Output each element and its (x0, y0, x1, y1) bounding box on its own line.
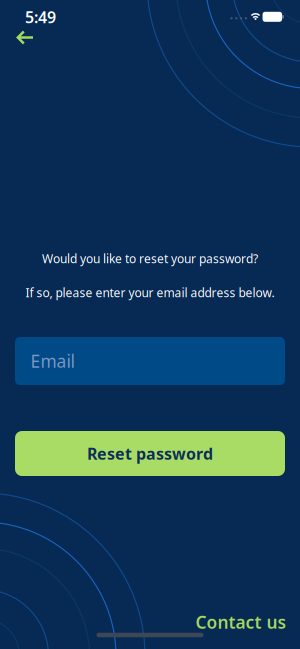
staticText: 5:49 (25, 6, 56, 28)
staticText: Contact us (195, 610, 286, 633)
staticText: If so, please enter your email address b… (25, 284, 274, 300)
button[interactable]: Email (15, 337, 285, 385)
staticText: Reset password (87, 443, 213, 464)
staticText: Email (30, 349, 74, 372)
button[interactable]: Reset password (15, 431, 285, 476)
button[interactable]: Contact us (195, 610, 286, 633)
button[interactable]: Back (8, 23, 41, 51)
staticText: Would you like to reset your password? (42, 250, 258, 266)
